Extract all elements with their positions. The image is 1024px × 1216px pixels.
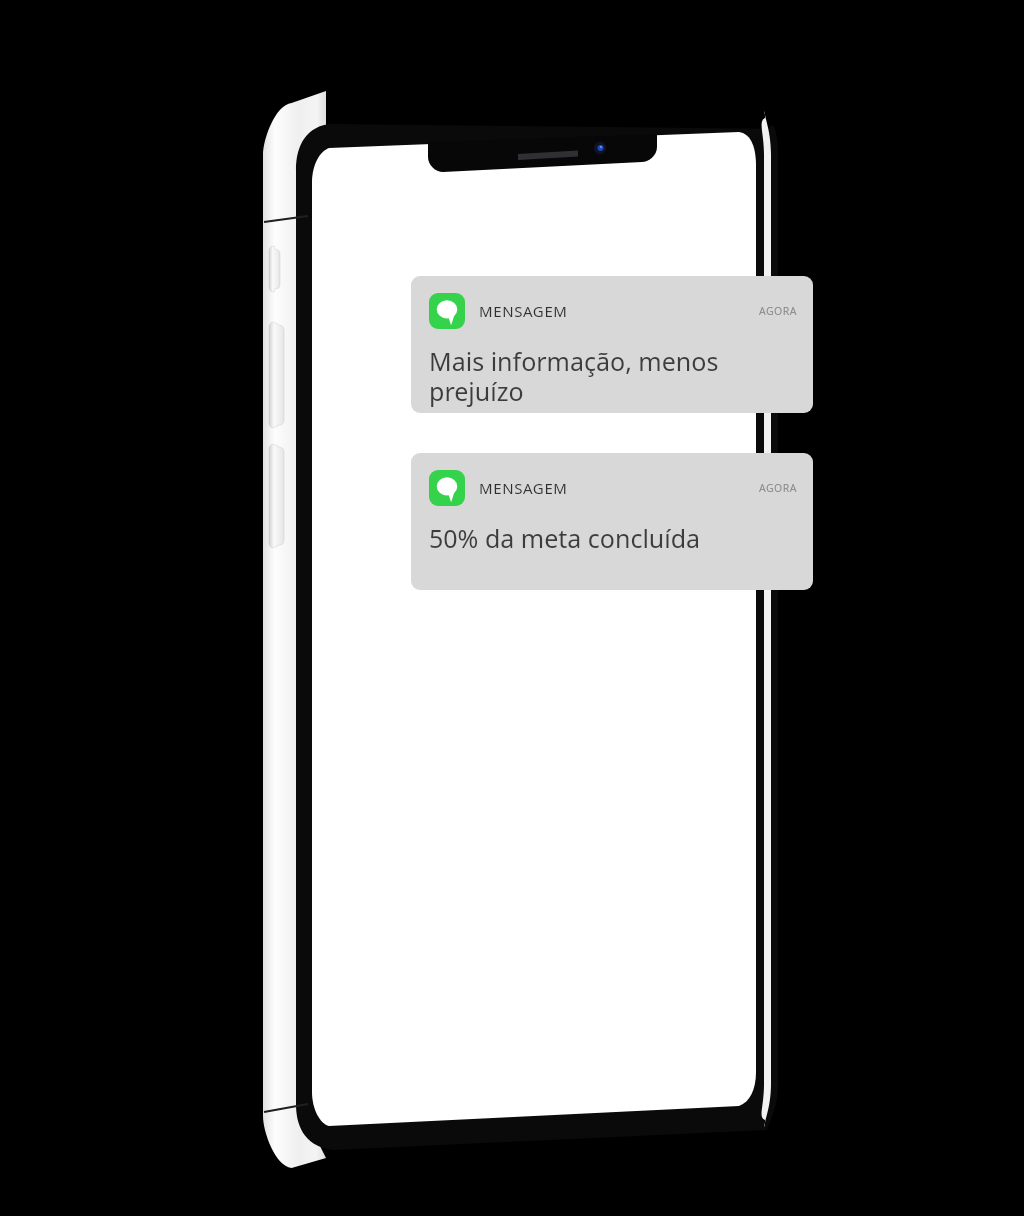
staticText: MENSAGEM bbox=[479, 301, 568, 321]
staticText: AGORA bbox=[758, 304, 797, 318]
staticText: 50% da meta concluída bbox=[429, 521, 701, 555]
other: Mensagem bbox=[429, 293, 465, 329]
staticText: AGORA bbox=[758, 481, 797, 495]
button[interactable]: Mensagem bbox=[411, 453, 813, 590]
button[interactable]: Mensagem bbox=[411, 276, 813, 413]
other: Mensagem bbox=[429, 470, 465, 506]
staticText: MENSAGEM bbox=[479, 478, 568, 498]
staticText: Mais informação, menos prejuízo bbox=[429, 344, 719, 409]
